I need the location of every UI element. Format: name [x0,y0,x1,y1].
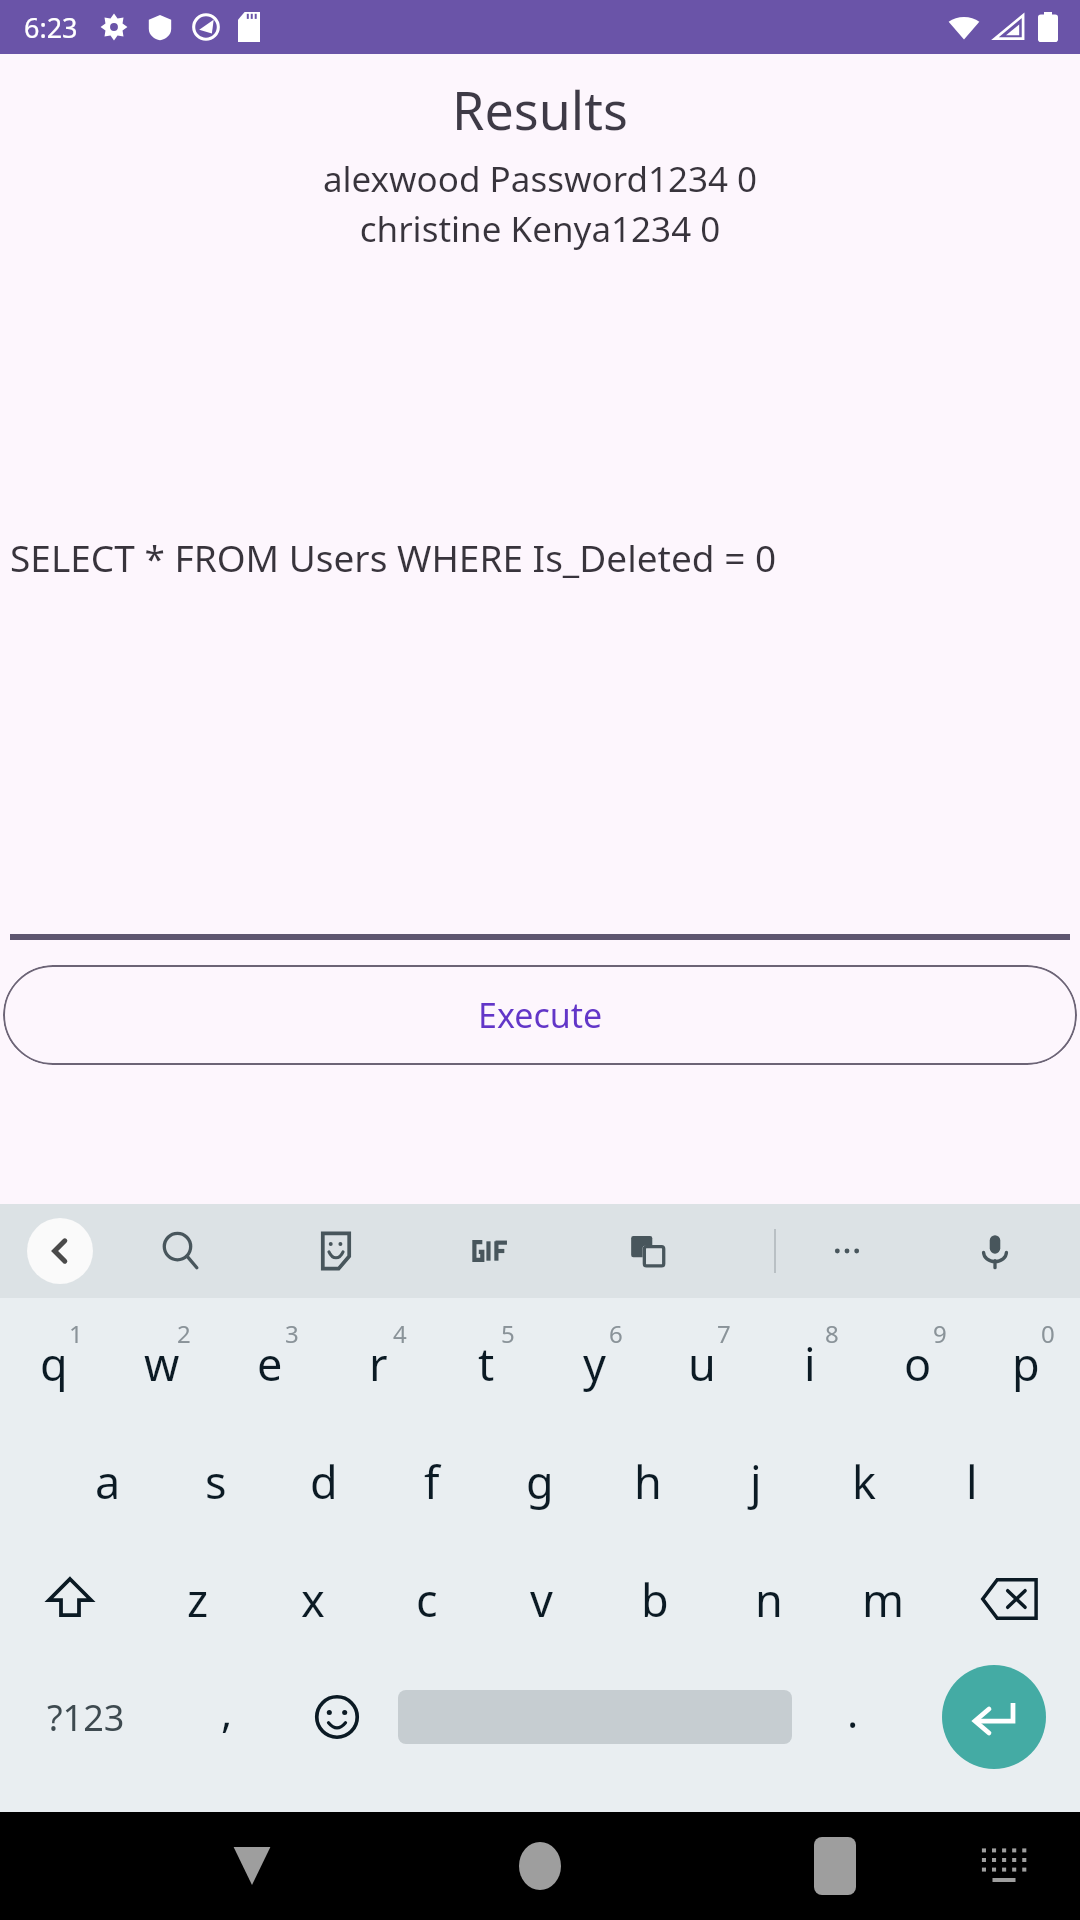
staticText: 4 [393,1317,407,1350]
button[interactable]: g [486,1422,594,1540]
staticText: h [634,1451,662,1512]
button[interactable]: Switch keyboard [964,1826,1044,1906]
button[interactable]: z [140,1540,255,1658]
staticText: 7 [717,1317,731,1350]
staticText: 3 [285,1317,299,1350]
button[interactable]: , [172,1658,282,1776]
button[interactable]: Execute [3,965,1077,1065]
button[interactable]: q [0,1304,108,1422]
staticText: alexwood Password1234 0 christine Kenya1… [0,155,1080,252]
button[interactable]: j [702,1422,810,1540]
staticText: . [847,1683,859,1740]
button[interactable]: p [972,1304,1080,1422]
staticText: 1 [69,1317,83,1350]
button[interactable]: u [648,1304,756,1422]
button[interactable]: r [324,1304,432,1422]
button[interactable]: . [798,1658,908,1776]
button[interactable]: Recent apps [795,1826,875,1906]
staticText: g [526,1451,554,1512]
button[interactable]: n [712,1540,826,1658]
button[interactable]: k [810,1422,918,1540]
staticText: k [852,1451,877,1512]
staticText: d [310,1451,338,1512]
staticText: c [416,1569,438,1630]
button[interactable]: h [594,1422,702,1540]
button[interactable]: c [370,1540,484,1658]
button[interactable]: Emoji [282,1658,392,1776]
button[interactable]: a [54,1422,162,1540]
button[interactable]: w [108,1304,216,1422]
staticText: q [40,1333,68,1394]
button[interactable]: m [826,1540,940,1658]
staticText: m [862,1569,905,1630]
button[interactable]: ?123 [0,1658,172,1776]
staticText: ?123 [47,1693,125,1742]
staticText: t [478,1333,495,1394]
staticText: j [750,1451,762,1512]
button[interactable]: x [255,1540,370,1658]
button[interactable]: GIF [459,1218,525,1284]
button[interactable]: v [484,1540,598,1658]
staticText: i [804,1333,816,1394]
button[interactable]: Back [212,1826,292,1906]
button[interactable]: o [864,1304,972,1422]
button[interactable]: d [270,1422,378,1540]
button[interactable]: y [540,1304,648,1422]
staticText: 2 [177,1317,191,1350]
staticText: 6:23 [24,9,78,46]
staticText: r [369,1333,388,1394]
staticText: 9 [933,1317,947,1350]
button[interactable]: Stickers [303,1218,369,1284]
button[interactable]: Home [500,1826,580,1906]
staticText: y [583,1333,606,1394]
button[interactable]: i [756,1304,864,1422]
staticText: s [205,1451,227,1512]
staticText: 6 [609,1317,623,1350]
button[interactable]: Back [27,1218,93,1284]
staticText: Execute [478,992,603,1038]
button[interactable]: Space [392,1658,798,1776]
button[interactable]: Backspace [940,1540,1080,1658]
staticText: e [257,1333,283,1394]
staticText: v [530,1569,553,1630]
button[interactable]: More options [814,1218,880,1284]
button[interactable]: Shift [0,1540,140,1658]
button[interactable]: f [378,1422,486,1540]
staticText: w [144,1333,180,1394]
staticText: p [1012,1333,1040,1394]
button[interactable]: Search [148,1218,214,1284]
button[interactable]: Voice input [962,1218,1028,1284]
staticText: , [221,1683,233,1740]
button[interactable]: Enter [908,1658,1080,1776]
staticText: n [755,1569,783,1630]
staticText: 5 [501,1317,515,1350]
staticText: 8 [825,1317,839,1350]
staticText: u [688,1333,716,1394]
staticText: a [95,1451,121,1512]
staticText: SELECT * FROM Users WHERE Is_Deleted = 0 [10,532,1080,582]
staticText: o [904,1333,932,1394]
button[interactable]: Translate [614,1218,680,1284]
button[interactable]: s [162,1422,270,1540]
staticText: b [641,1569,669,1630]
staticText: l [966,1451,978,1512]
button[interactable]: b [598,1540,712,1658]
button[interactable]: l [918,1422,1026,1540]
staticText: Results [0,74,1080,145]
staticText: 0 [1041,1317,1055,1350]
staticText: f [424,1451,440,1512]
staticText: z [187,1569,209,1630]
button[interactable]: e [216,1304,324,1422]
staticText: x [301,1569,325,1630]
button[interactable]: t [432,1304,540,1422]
